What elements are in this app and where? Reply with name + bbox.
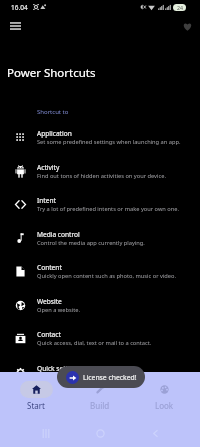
staticText: Shortcut to <box>37 108 69 116</box>
staticText: Quick settings <box>37 364 81 373</box>
button[interactable]: Content <box>0 254 200 288</box>
staticText: Look <box>155 400 174 411</box>
button[interactable]: Start <box>4 372 68 411</box>
staticText: Website <box>37 297 62 306</box>
staticText: Media control <box>37 230 80 239</box>
staticText: Try a lot of predefined intents or make … <box>37 205 180 213</box>
button[interactable]: Quick settings <box>0 355 200 389</box>
button[interactable]: License checked! <box>57 366 145 388</box>
staticText: License checked! <box>83 373 137 382</box>
button[interactable]: Home <box>91 424 109 442</box>
staticText: Quick access, dial, text or mail to a co… <box>37 339 152 347</box>
button[interactable]: Favorite <box>177 16 197 36</box>
button[interactable]: Website <box>0 288 200 322</box>
button[interactable]: Activity <box>0 154 200 188</box>
staticText: 24 <box>177 4 183 11</box>
staticText: 16.04 <box>11 3 28 12</box>
staticText: Intent <box>37 196 56 205</box>
staticText: Activity <box>37 163 60 172</box>
staticText: Open a website. <box>37 306 80 314</box>
button[interactable]: Look <box>132 372 196 411</box>
button[interactable]: Intent <box>0 187 200 221</box>
button[interactable]: Menu <box>5 16 25 36</box>
staticText: Toggle quick settings tiles in one tap. <box>37 373 136 381</box>
staticText: Quickly open content such as photo, musi… <box>37 272 177 280</box>
staticText: Build <box>90 400 110 411</box>
staticText: Application <box>37 129 72 138</box>
button[interactable]: Contact <box>0 321 200 355</box>
staticText: Control the media app currently playing. <box>37 239 145 247</box>
staticText: Find out tons of hidden activities on yo… <box>37 172 166 180</box>
button[interactable]: Build <box>68 372 132 411</box>
staticText: Set some predefined settings when launch… <box>37 138 181 146</box>
button[interactable]: Recents <box>37 424 55 442</box>
button[interactable]: Media control <box>0 221 200 255</box>
button[interactable]: Application <box>0 120 200 154</box>
staticText: Contact <box>37 330 61 339</box>
staticText: Content <box>37 263 62 272</box>
staticText: Start <box>27 400 45 411</box>
staticText: Power Shortcuts <box>7 65 96 81</box>
